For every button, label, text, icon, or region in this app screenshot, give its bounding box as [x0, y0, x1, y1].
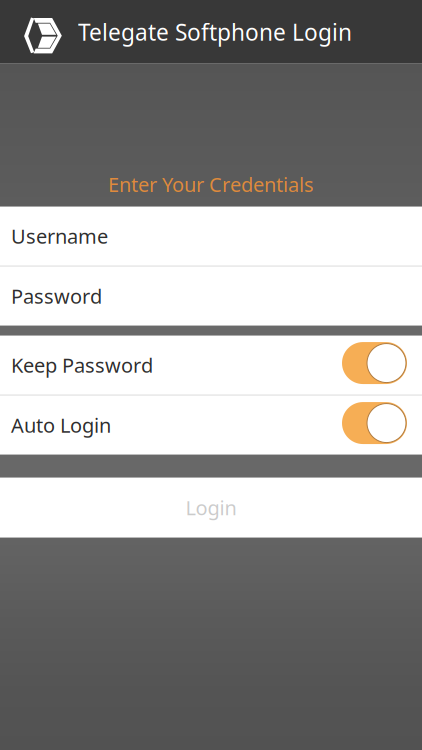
button[interactable]: Auto Login: [342, 402, 407, 448]
staticText: Password: [11, 283, 102, 309]
staticText: Telegate Softphone Login: [78, 17, 352, 47]
staticText: Keep Password: [11, 352, 153, 378]
button[interactable]: Username: [0, 207, 422, 266]
button[interactable]: Keep Password: [342, 342, 407, 388]
staticText: Login: [185, 494, 236, 521]
staticText: Username: [11, 223, 108, 249]
staticText: Enter Your Credentials: [108, 171, 314, 198]
button[interactable]: Login: [0, 478, 422, 538]
staticText: Auto Login: [11, 412, 111, 438]
button[interactable]: Password: [0, 267, 422, 326]
